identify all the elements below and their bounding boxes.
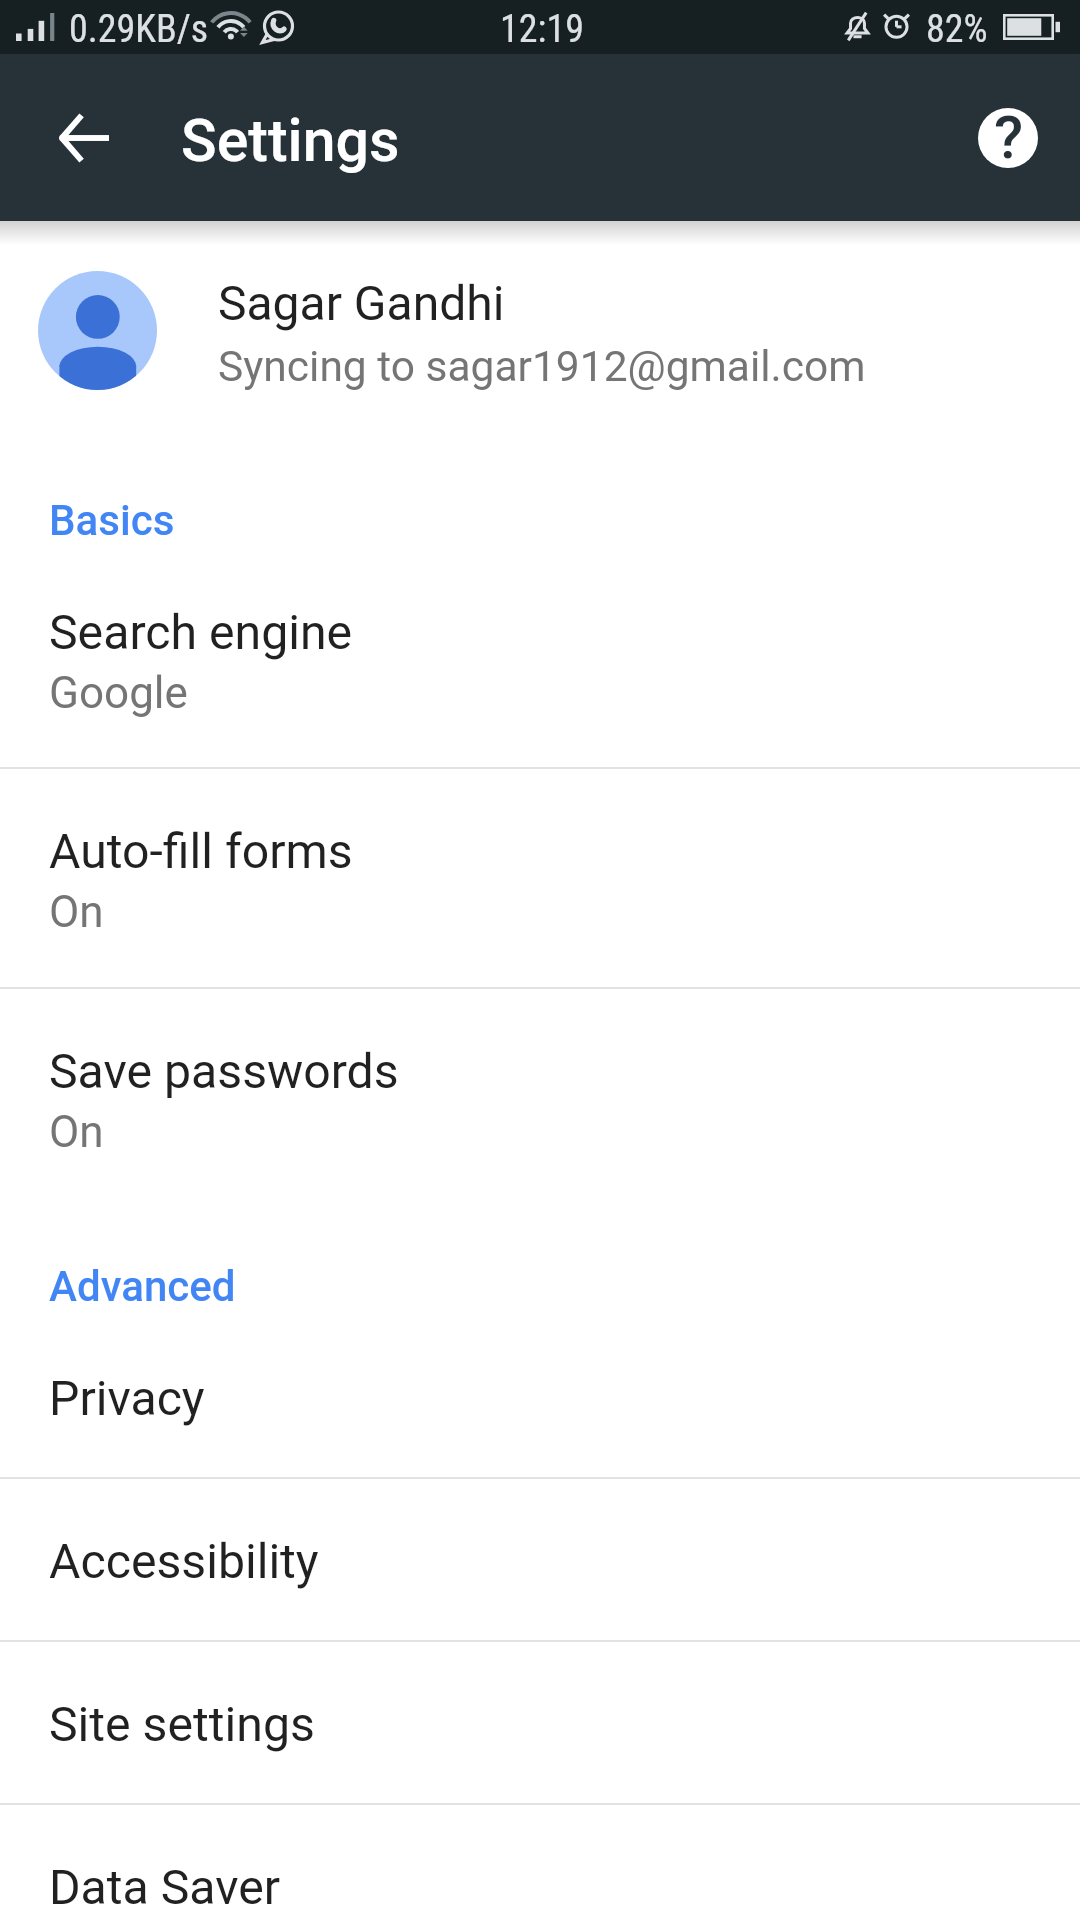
button[interactable]: Site settings xyxy=(0,1640,1080,1803)
button[interactable]: Sagar Gandhi xyxy=(0,245,1080,425)
button[interactable]: Navigate up xyxy=(24,78,144,198)
staticText: Settings xyxy=(181,106,400,175)
staticText: Auto-fill forms xyxy=(49,823,353,879)
staticText: Google xyxy=(49,667,188,719)
staticText: Search engine xyxy=(49,604,353,660)
staticText: Data Saver xyxy=(49,1859,281,1915)
button[interactable]: Auto-fill forms xyxy=(0,767,1080,987)
staticText: Site settings xyxy=(49,1696,315,1752)
staticText: On xyxy=(49,886,104,938)
staticText: Save passwords xyxy=(49,1043,399,1099)
staticText: Syncing to sagar1912@gmail.com xyxy=(218,342,866,392)
staticText: ? xyxy=(994,108,1024,162)
button[interactable]: Search engine xyxy=(0,567,1080,767)
button[interactable]: Accessibility xyxy=(0,1477,1080,1640)
staticText: Sagar Gandhi xyxy=(218,275,505,331)
staticText: Basics xyxy=(49,496,175,545)
staticText: Privacy xyxy=(49,1370,205,1426)
button[interactable]: Help and feedback xyxy=(947,77,1068,198)
button[interactable]: Save passwords xyxy=(0,987,1080,1207)
staticText: Advanced xyxy=(49,1262,236,1311)
button[interactable]: Data Saver xyxy=(0,1803,1080,1920)
staticText: Accessibility xyxy=(49,1533,319,1589)
button[interactable]: Privacy xyxy=(0,1334,1080,1477)
staticText: 12:19 xyxy=(500,7,584,52)
staticText: 82% xyxy=(926,7,988,52)
staticText: 0.29KB/s xyxy=(69,7,209,52)
staticText: On xyxy=(49,1106,104,1158)
